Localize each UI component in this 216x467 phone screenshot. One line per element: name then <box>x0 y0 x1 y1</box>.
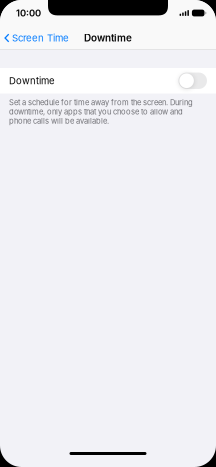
staticText: Screen Time <box>12 32 69 44</box>
button[interactable]: Downtime <box>178 72 207 89</box>
staticText: Downtime <box>9 75 55 86</box>
button[interactable]: Screen Time <box>0 26 76 50</box>
staticText: 10:00 <box>16 7 41 19</box>
staticText: Set a schedule for time away from the sc… <box>9 98 193 126</box>
staticText: Downtime <box>84 32 132 44</box>
